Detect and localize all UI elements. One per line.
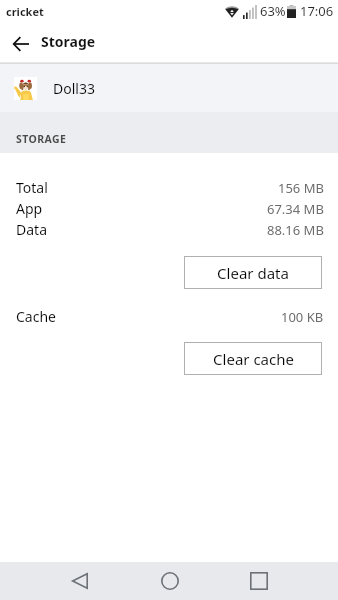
staticText: Clear data (217, 263, 289, 283)
staticText: Data (16, 220, 47, 239)
staticText: Storage (41, 32, 96, 51)
staticText: 63% (260, 2, 286, 20)
staticText: 67.34 MB (267, 200, 324, 218)
staticText: 156 MB (278, 179, 324, 197)
button[interactable]: Back (0, 24, 42, 63)
staticText: Total (16, 178, 48, 197)
button[interactable]: Home (147, 562, 192, 600)
staticText: STORAGE (16, 132, 67, 146)
staticText: Doll33 (53, 79, 95, 98)
button[interactable]: Recent apps (236, 562, 281, 600)
staticText: App (16, 199, 43, 218)
button[interactable]: Clear data (184, 256, 322, 289)
staticText: 17:06 (300, 2, 334, 20)
button[interactable]: Doll33 (0, 64, 338, 112)
staticText: Clear cache (213, 349, 294, 369)
button[interactable]: Clear cache (184, 342, 322, 375)
staticText: Cache (16, 307, 56, 326)
staticText: 100 KB (281, 308, 324, 326)
button[interactable]: Back (57, 562, 102, 600)
staticText: cricket (6, 4, 44, 19)
staticText: 88.16 MB (267, 221, 324, 239)
